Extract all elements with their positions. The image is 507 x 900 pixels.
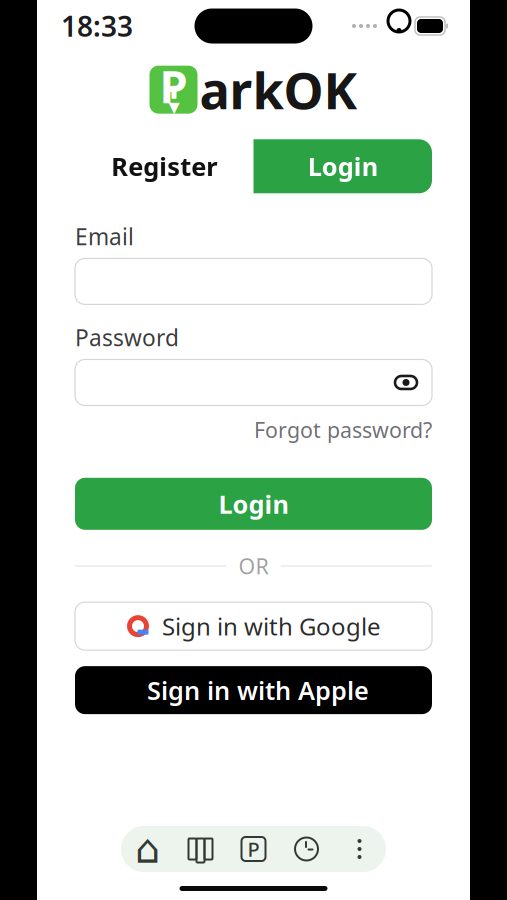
staticText: Sign in with Apple xyxy=(147,673,369,707)
button[interactable] xyxy=(75,666,432,714)
staticText: P xyxy=(159,55,187,116)
button[interactable]: Show password xyxy=(386,362,426,402)
button[interactable]: Login xyxy=(253,139,432,193)
button[interactable]: Sign in with Google xyxy=(75,602,432,650)
button[interactable]: Login xyxy=(75,478,432,530)
staticText: Login xyxy=(218,487,288,521)
button[interactable]: More xyxy=(333,826,386,872)
staticText: 18:33 xyxy=(61,7,133,45)
staticText: OR xyxy=(238,552,268,580)
button[interactable]: Map xyxy=(174,826,227,872)
staticText: Sign in with Google xyxy=(162,610,381,642)
staticText: Email xyxy=(75,221,134,251)
button[interactable]: Register xyxy=(75,139,253,193)
staticText: P xyxy=(247,836,259,862)
button[interactable]: History xyxy=(280,826,333,872)
staticText: ⌂ xyxy=(135,826,160,872)
button[interactable]: Parking xyxy=(227,826,280,872)
staticText: Forgot password? xyxy=(254,415,432,444)
button[interactable]: Forgot password? xyxy=(254,415,432,444)
staticText: Register xyxy=(111,149,217,183)
staticText: ▼ xyxy=(168,99,179,115)
staticText: Login xyxy=(308,149,378,183)
button[interactable]: Home xyxy=(121,826,174,872)
staticText: Password xyxy=(75,322,179,352)
staticText: arkOK xyxy=(199,56,357,123)
